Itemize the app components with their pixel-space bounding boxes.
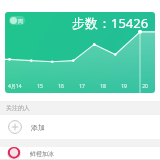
staticText: 20	[138, 83, 152, 90]
staticText: 周	[18, 18, 23, 24]
staticText: 16	[54, 83, 68, 90]
button[interactable]: Toggle period	[10, 16, 24, 25]
button[interactable]: 鲜橙加冰	[0, 147, 160, 160]
staticText: 17	[75, 83, 89, 90]
staticText: 15	[33, 83, 47, 90]
button[interactable]: Toggle period	[5, 12, 155, 93]
staticText: 19	[117, 83, 131, 90]
staticText: 步数：15426	[72, 14, 149, 32]
staticText: 鲜橙加冰	[30, 150, 54, 158]
staticText: 关注的人	[6, 104, 30, 112]
staticText: 18	[96, 83, 110, 90]
staticText: 添加	[31, 123, 45, 132]
staticText: 4月14	[8, 83, 26, 90]
button[interactable]: 添加	[0, 115, 160, 139]
